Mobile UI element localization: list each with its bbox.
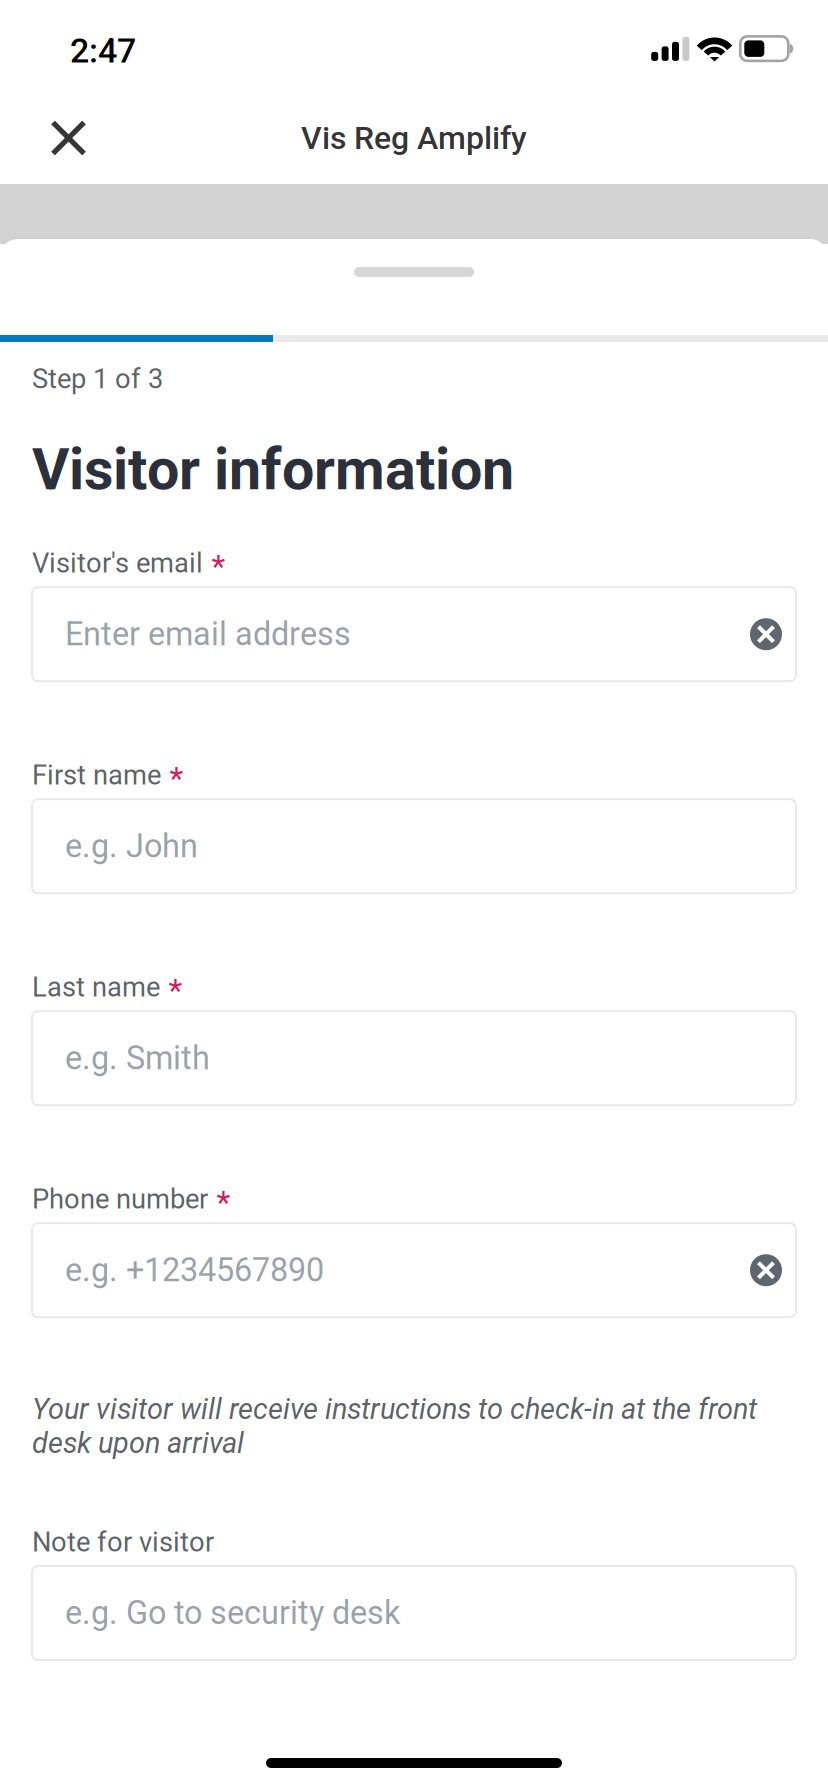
button[interactable]: Close [37, 102, 100, 173]
staticText: * [211, 547, 225, 585]
staticText: e.g. Smith [65, 1039, 210, 1077]
staticText: Last name [32, 971, 160, 1003]
staticText: 2:47 [70, 31, 136, 71]
staticText: First name [32, 762, 161, 794]
button[interactable]: e.g. Smith [32, 1011, 796, 1105]
staticText: Visitor information [32, 436, 514, 503]
staticText: * [216, 1183, 230, 1221]
staticText: * [169, 759, 183, 797]
staticText: Step 1 of 3 [32, 363, 163, 395]
staticText: Vis Reg Amplify [301, 119, 527, 157]
staticText: e.g. Go to security desk [65, 1594, 400, 1632]
staticText: Visitor's email [32, 547, 203, 579]
staticText: Phone number [32, 1183, 208, 1215]
button[interactable]: e.g. +1234567890 [32, 1223, 796, 1317]
staticText: Your visitor will receive instructions t… [32, 1392, 757, 1460]
staticText: Enter email address [65, 615, 351, 653]
staticText: Note for visitor [32, 1526, 214, 1558]
staticText: Visitor's email [32, 550, 203, 582]
staticText: Last name [32, 974, 160, 1006]
button[interactable]: Enter email address [32, 587, 796, 681]
button[interactable]: e.g. Go to security desk [32, 1566, 796, 1660]
staticText: First name [32, 759, 161, 791]
staticText: Phone number [32, 1186, 208, 1218]
staticText: e.g. +1234567890 [65, 1251, 324, 1289]
staticText: e.g. John [65, 827, 198, 865]
staticText: * [168, 971, 182, 1009]
button[interactable]: e.g. John [32, 799, 796, 893]
